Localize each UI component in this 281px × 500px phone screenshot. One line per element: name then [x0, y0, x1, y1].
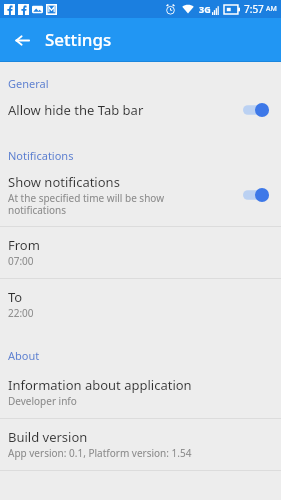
staticText: 22:00 [8, 306, 34, 320]
staticText: AM [266, 4, 277, 14]
staticText: Allow hide the Tab bar [8, 101, 144, 119]
button[interactable]: Information about application [0, 365, 281, 418]
staticText: 3G [199, 3, 211, 15]
staticText: Show notifications [8, 173, 120, 191]
staticText: Build version [8, 428, 88, 446]
staticText: About [8, 348, 40, 363]
button[interactable]: Build version [0, 419, 281, 470]
button[interactable]: To [0, 279, 281, 330]
button[interactable]: Toggle on [243, 102, 271, 118]
staticText: From [8, 236, 40, 254]
button[interactable]: From [0, 227, 281, 278]
button[interactable]: Toggle on [243, 187, 271, 203]
button[interactable]: Allow hide the Tab bar [0, 93, 281, 128]
staticText: Developer info [8, 394, 77, 408]
button[interactable]: Show notifications [0, 165, 281, 226]
staticText: App version: 0.1, Platform version: 1.54 [8, 446, 192, 460]
staticText: General [8, 76, 49, 91]
staticText: Information about application [8, 376, 192, 394]
button[interactable]: Back [7, 25, 37, 55]
staticText: 7:57 [244, 2, 264, 16]
staticText: To [8, 288, 23, 306]
staticText: At the specified time will be show notif… [8, 191, 165, 217]
staticText: Notifications [8, 148, 74, 163]
staticText: Settings [45, 28, 112, 51]
staticText: 07:00 [8, 254, 34, 268]
